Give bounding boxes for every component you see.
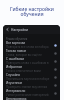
staticText: Только отмеченные вами карточки bbox=[6, 69, 52, 73]
staticText: Повторять все слова из набора по кругу bbox=[6, 45, 52, 49]
button[interactable]: Изученные bbox=[3, 81, 60, 89]
staticText: Изученные bbox=[6, 81, 23, 85]
staticText: Проверить знание выученных слов bbox=[6, 85, 52, 89]
staticText: Все карточки bbox=[6, 41, 26, 45]
button[interactable]: Select option bbox=[53, 83, 58, 88]
staticText: Автопроверка bbox=[6, 97, 27, 100]
staticText: Настройки bbox=[11, 28, 29, 32]
staticText: Перемешать карточки в наборе bbox=[6, 77, 50, 81]
staticText: Избранное bbox=[6, 65, 23, 69]
button[interactable]: Back bbox=[5, 27, 10, 32]
staticText: С ошибками bbox=[6, 57, 25, 61]
button[interactable]: Автопроверка bbox=[3, 97, 60, 100]
staticText: Только новые bbox=[6, 49, 27, 53]
staticText: Гибкие настройки обучения bbox=[10, 6, 54, 17]
staticText: Режим обучения bbox=[6, 37, 28, 41]
button[interactable]: Только новые bbox=[3, 49, 60, 57]
button[interactable]: Select option bbox=[53, 59, 58, 64]
button[interactable]: Все карточки bbox=[3, 41, 60, 49]
button[interactable]: Select option bbox=[53, 51, 58, 56]
button[interactable]: Интервально bbox=[3, 89, 60, 97]
staticText: Повторить слова с ошибками в ответах bbox=[6, 61, 52, 65]
button[interactable]: Случайно bbox=[3, 73, 60, 81]
staticText: Слова, которые вы ещё не изучали bbox=[6, 53, 52, 57]
button[interactable]: Select option bbox=[53, 43, 58, 48]
staticText: Случайно bbox=[6, 73, 21, 77]
button[interactable]: Select option bbox=[53, 67, 58, 72]
button[interactable]: Select option bbox=[53, 91, 58, 96]
staticText: Умное расписание повторений слов bbox=[6, 93, 52, 97]
button[interactable]: С ошибками bbox=[3, 57, 60, 65]
button[interactable]: Select option bbox=[53, 75, 58, 80]
button[interactable]: Избранное bbox=[3, 65, 60, 73]
staticText: Интервально bbox=[6, 89, 26, 93]
